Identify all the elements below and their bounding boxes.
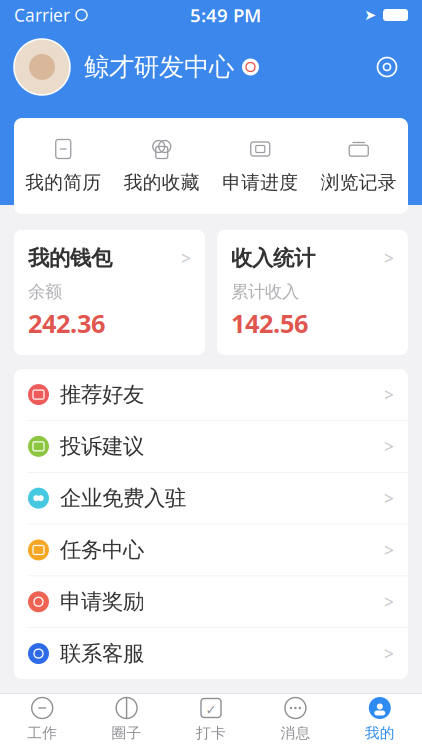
button[interactable]: 我的收藏: [112, 138, 211, 194]
button[interactable]: 我的简历: [14, 138, 112, 194]
button[interactable]: 工作: [0, 694, 84, 744]
staticText: >: [384, 383, 394, 406]
staticText: 工作: [27, 724, 57, 742]
staticText: 任务中心: [60, 537, 144, 563]
staticText: >: [384, 487, 394, 510]
staticText: 推荐好友: [60, 381, 144, 408]
button[interactable]: 消息: [253, 694, 338, 744]
staticText: ➤: [364, 7, 376, 23]
staticText: >: [384, 642, 394, 665]
staticText: 收入统计: [231, 245, 315, 271]
staticText: >: [181, 246, 191, 269]
staticText: 我的收藏: [124, 171, 200, 194]
button[interactable]: 投诉建议: [14, 421, 408, 472]
staticText: 我的简历: [25, 171, 101, 194]
button[interactable]: 浏览记录: [309, 138, 408, 194]
staticText: 申请奖励: [60, 589, 144, 615]
staticText: 鲸才研发中心: [84, 51, 234, 82]
staticText: 联系客服: [60, 640, 144, 667]
button[interactable]: 任务中心: [14, 524, 408, 575]
button[interactable]: 联系客服: [14, 628, 408, 679]
button[interactable]: 我的钱包: [14, 230, 205, 355]
staticText: 我的钱包: [28, 245, 112, 271]
button[interactable]: 申请奖励: [14, 576, 408, 627]
staticText: 申请进度: [222, 171, 298, 194]
staticText: >: [384, 538, 394, 561]
staticText: >: [384, 590, 394, 613]
staticText: 投诉建议: [60, 433, 144, 459]
button[interactable]: 收入统计: [217, 230, 408, 355]
button[interactable]: 圈子: [84, 694, 169, 744]
staticText: 242.36: [28, 306, 105, 340]
staticText: 5:49 PM: [190, 3, 261, 27]
staticText: >: [384, 246, 394, 269]
staticText: >: [384, 435, 394, 458]
staticText: 消息: [280, 724, 310, 742]
button[interactable]: Settings: [366, 46, 408, 88]
staticText: ✓: [205, 702, 216, 717]
button[interactable]: 申请进度: [211, 138, 309, 194]
button[interactable]: 推荐好友: [14, 369, 408, 420]
button[interactable]: 企业免费入驻: [14, 473, 408, 524]
staticText: 企业免费入驻: [60, 485, 186, 511]
staticText: 累计收入: [231, 281, 299, 302]
staticText: 142.56: [231, 306, 308, 340]
staticText: 圈子: [112, 724, 142, 742]
staticText: 浏览记录: [321, 171, 397, 194]
button[interactable]: ✓: [169, 694, 253, 744]
button[interactable]: 我的: [338, 694, 422, 744]
staticText: 余额: [28, 281, 62, 302]
staticText: 打卡: [196, 724, 226, 742]
staticText: 我的: [365, 724, 395, 742]
staticText: Carrier: [14, 3, 70, 26]
